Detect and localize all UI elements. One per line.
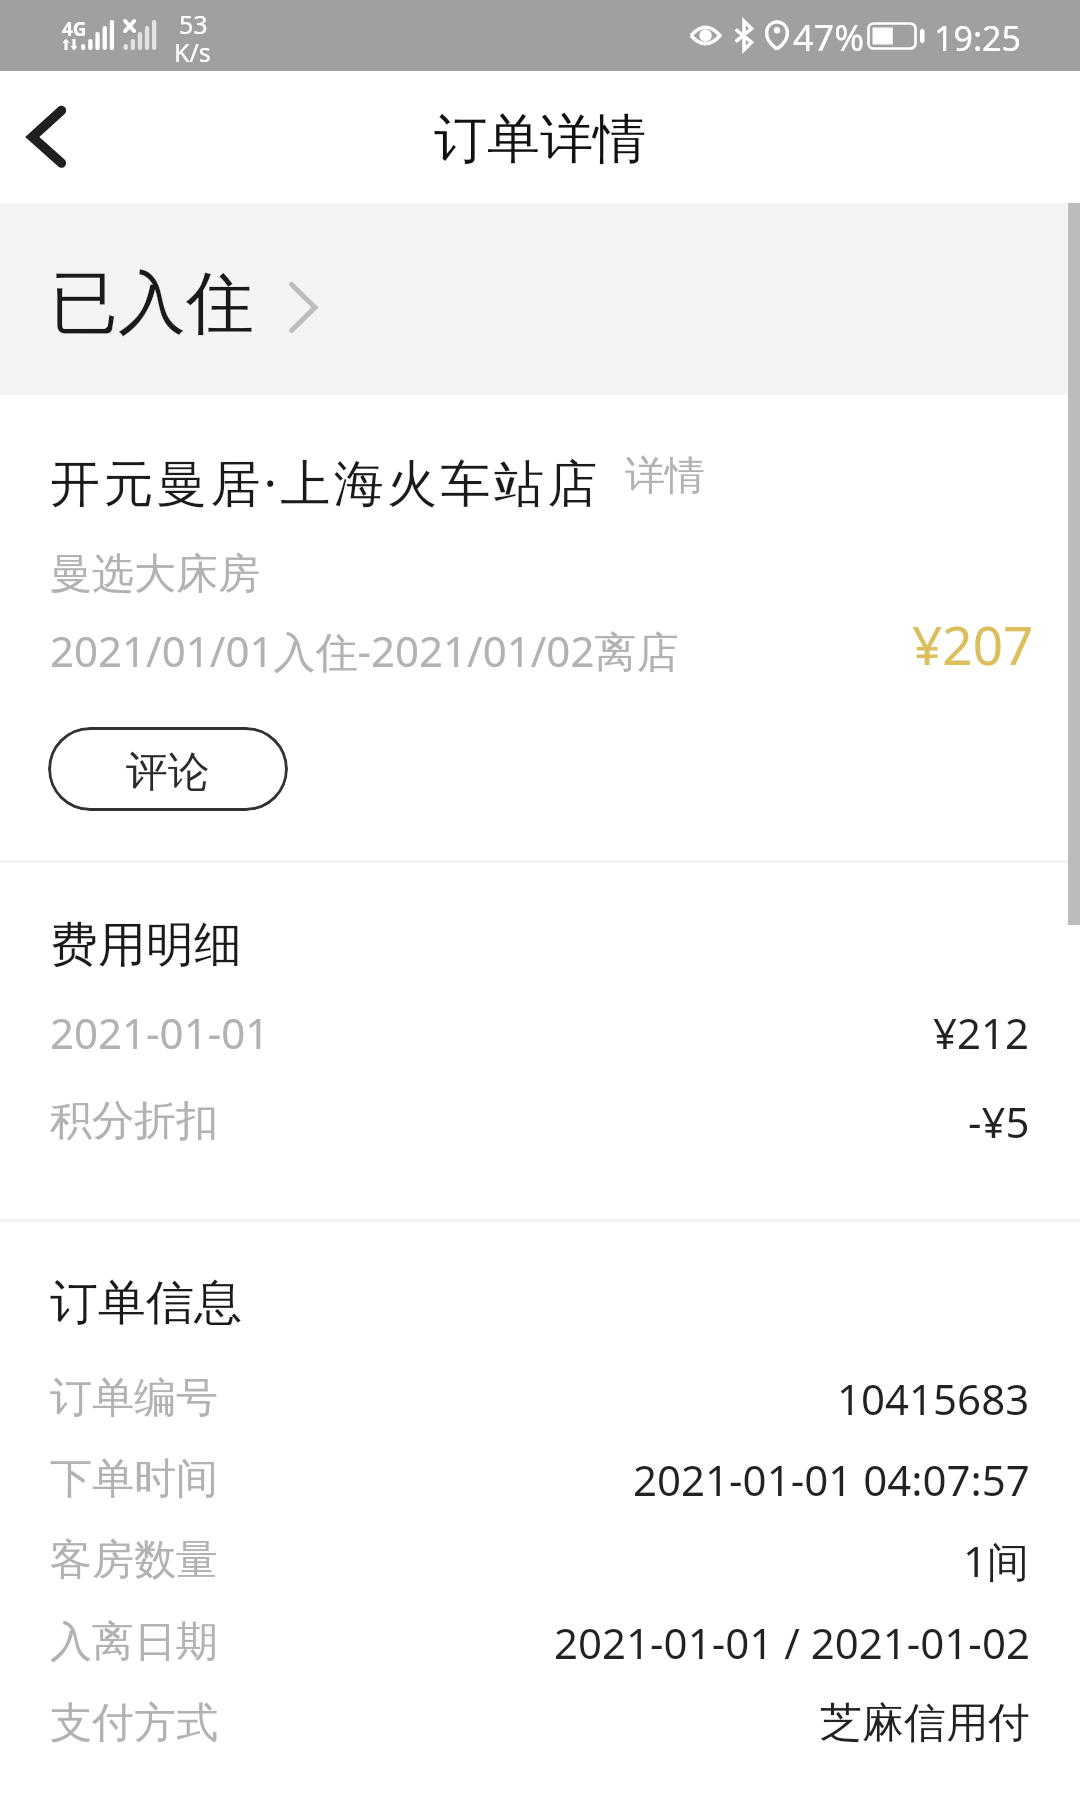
staticText: 10415683 — [837, 1370, 1030, 1427]
staticText: K/s — [174, 35, 211, 69]
staticText: 47% — [793, 13, 865, 62]
staticText: 订单编号 — [50, 1372, 218, 1425]
staticText: 曼选大床房 — [50, 548, 260, 601]
staticText: 2021/01/01入住-2021/01/02离店 — [50, 622, 679, 679]
staticText: -¥5 — [968, 1093, 1030, 1150]
staticText: 入离日期 — [50, 1616, 218, 1669]
staticText: 53 — [179, 7, 208, 41]
button[interactable]: 开元曼居·上海火车站店 — [50, 448, 601, 516]
staticText: 2021-01-01 — [50, 1004, 270, 1061]
staticText: 已入住 — [50, 261, 254, 347]
staticText: 1间 — [963, 1532, 1030, 1589]
staticText: 开元曼居·上海火车站店 — [50, 448, 601, 516]
button[interactable]: 已入住 — [0, 203, 1067, 395]
staticText: 费用明细 — [50, 915, 242, 975]
staticText: 订单信息 — [50, 1273, 242, 1333]
staticText: 支付方式 — [50, 1697, 218, 1750]
staticText: 订单详情 — [0, 106, 1080, 173]
staticText: 详情 — [625, 450, 705, 500]
staticText: 客房数量 — [50, 1534, 218, 1587]
staticText: 评论 — [126, 746, 210, 799]
staticText: 芝麻信用付 — [820, 1697, 1030, 1750]
staticText: 积分折扣 — [50, 1095, 218, 1148]
staticText: 下单时间 — [50, 1453, 218, 1506]
staticText: 19:25 — [934, 15, 1021, 61]
staticText: ¥207 — [912, 608, 1034, 680]
button[interactable]: 评论 — [48, 727, 288, 811]
staticText: 4G — [62, 16, 87, 42]
button[interactable]: Back — [0, 71, 120, 193]
staticText: ¥212 — [933, 1004, 1030, 1061]
staticText: 2021-01-01 04:07:57 — [633, 1451, 1030, 1508]
button[interactable]: 详情 — [625, 450, 705, 500]
staticText: 2021-01-01 / 2021-01-02 — [554, 1614, 1030, 1671]
